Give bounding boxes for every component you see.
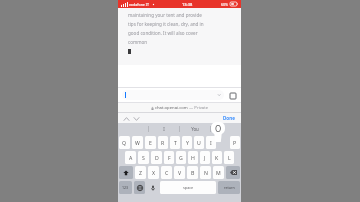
button[interactable]: Dictation	[147, 181, 158, 194]
staticText: P	[233, 139, 237, 146]
button[interactable]: T	[170, 136, 180, 149]
staticText: E	[149, 139, 152, 146]
button[interactable]: I	[149, 123, 179, 134]
staticText: L	[228, 154, 231, 161]
staticText: maintaining your tent and provide	[128, 12, 202, 18]
staticText: 13:38	[182, 2, 193, 7]
staticText: O	[215, 123, 222, 134]
button[interactable]: Z	[135, 166, 146, 179]
staticText: B	[191, 169, 195, 176]
button[interactable]: F	[164, 151, 174, 164]
button[interactable]: G	[176, 151, 186, 164]
button[interactable]: N	[200, 166, 211, 179]
button[interactable]: B	[187, 166, 198, 179]
staticText: — Private	[188, 105, 209, 111]
staticText: A	[129, 154, 133, 161]
staticText: Q	[122, 139, 127, 146]
button[interactable]: C	[161, 166, 172, 179]
staticText: You	[191, 126, 199, 132]
staticText: K	[215, 154, 219, 161]
button[interactable]	[211, 123, 241, 134]
button[interactable]: 123	[119, 181, 132, 194]
button[interactable]: return	[218, 181, 240, 194]
button[interactable]	[122, 90, 224, 100]
staticText: M	[216, 169, 221, 176]
staticText: R	[161, 139, 165, 146]
button[interactable]: Next field	[132, 114, 141, 123]
staticText: W	[135, 139, 140, 146]
staticText: G	[179, 154, 183, 161]
staticText: F	[168, 154, 171, 161]
staticText: vodafone IT	[129, 2, 150, 7]
staticText: Z	[139, 169, 142, 176]
button[interactable]: W	[132, 136, 143, 149]
staticText: common	[128, 39, 148, 45]
button[interactable]: I	[206, 136, 216, 149]
button[interactable]: V	[174, 166, 185, 179]
staticText: S	[142, 154, 145, 161]
button[interactable]: H	[188, 151, 198, 164]
button[interactable]: Q	[119, 136, 130, 149]
button[interactable]: Y	[182, 136, 192, 149]
staticText: Y	[186, 139, 189, 146]
staticText: T	[174, 139, 177, 146]
button[interactable]: Shift	[119, 166, 133, 179]
button[interactable]: R	[158, 136, 168, 149]
button[interactable]: Stop generating	[228, 91, 237, 100]
button[interactable]: Emoji keyboard	[134, 181, 145, 194]
staticText: X	[152, 169, 156, 176]
staticText: V	[178, 169, 182, 176]
staticText: chat.openai.com	[155, 105, 188, 111]
staticText: J	[204, 154, 206, 161]
staticText: Done	[223, 115, 235, 121]
button[interactable]: S	[138, 151, 149, 164]
button[interactable]: A	[125, 151, 136, 164]
staticText: good condition. It will also cover	[128, 30, 198, 36]
button[interactable]: space	[160, 181, 216, 194]
staticText: 123	[122, 185, 129, 190]
button[interactable]: J	[200, 151, 210, 164]
button[interactable]: chat.openai.com	[118, 103, 241, 112]
button[interactable]: Done	[221, 114, 237, 122]
staticText: H	[191, 154, 195, 161]
staticText: N	[204, 169, 208, 176]
staticText: C	[165, 169, 169, 176]
button[interactable]: Backspace	[226, 166, 240, 179]
button[interactable]: D	[151, 151, 162, 164]
button[interactable]: Previous field	[122, 114, 131, 123]
button[interactable]: X	[148, 166, 159, 179]
staticText: 60%	[221, 2, 229, 7]
button[interactable]: L	[224, 151, 234, 164]
button[interactable]: K	[212, 151, 222, 164]
button[interactable]: M	[213, 166, 224, 179]
staticText: space	[183, 185, 194, 190]
button[interactable]: P	[230, 136, 240, 149]
staticText: I	[163, 126, 165, 132]
staticText: tips for keeping it clean, dry, and in	[128, 21, 204, 27]
button[interactable]: E	[145, 136, 156, 149]
button[interactable]: You	[180, 123, 210, 134]
staticText: U	[197, 139, 201, 146]
staticText: I	[210, 139, 212, 146]
staticText: D	[155, 154, 159, 161]
staticText: return	[224, 185, 235, 190]
button[interactable]: U	[194, 136, 204, 149]
